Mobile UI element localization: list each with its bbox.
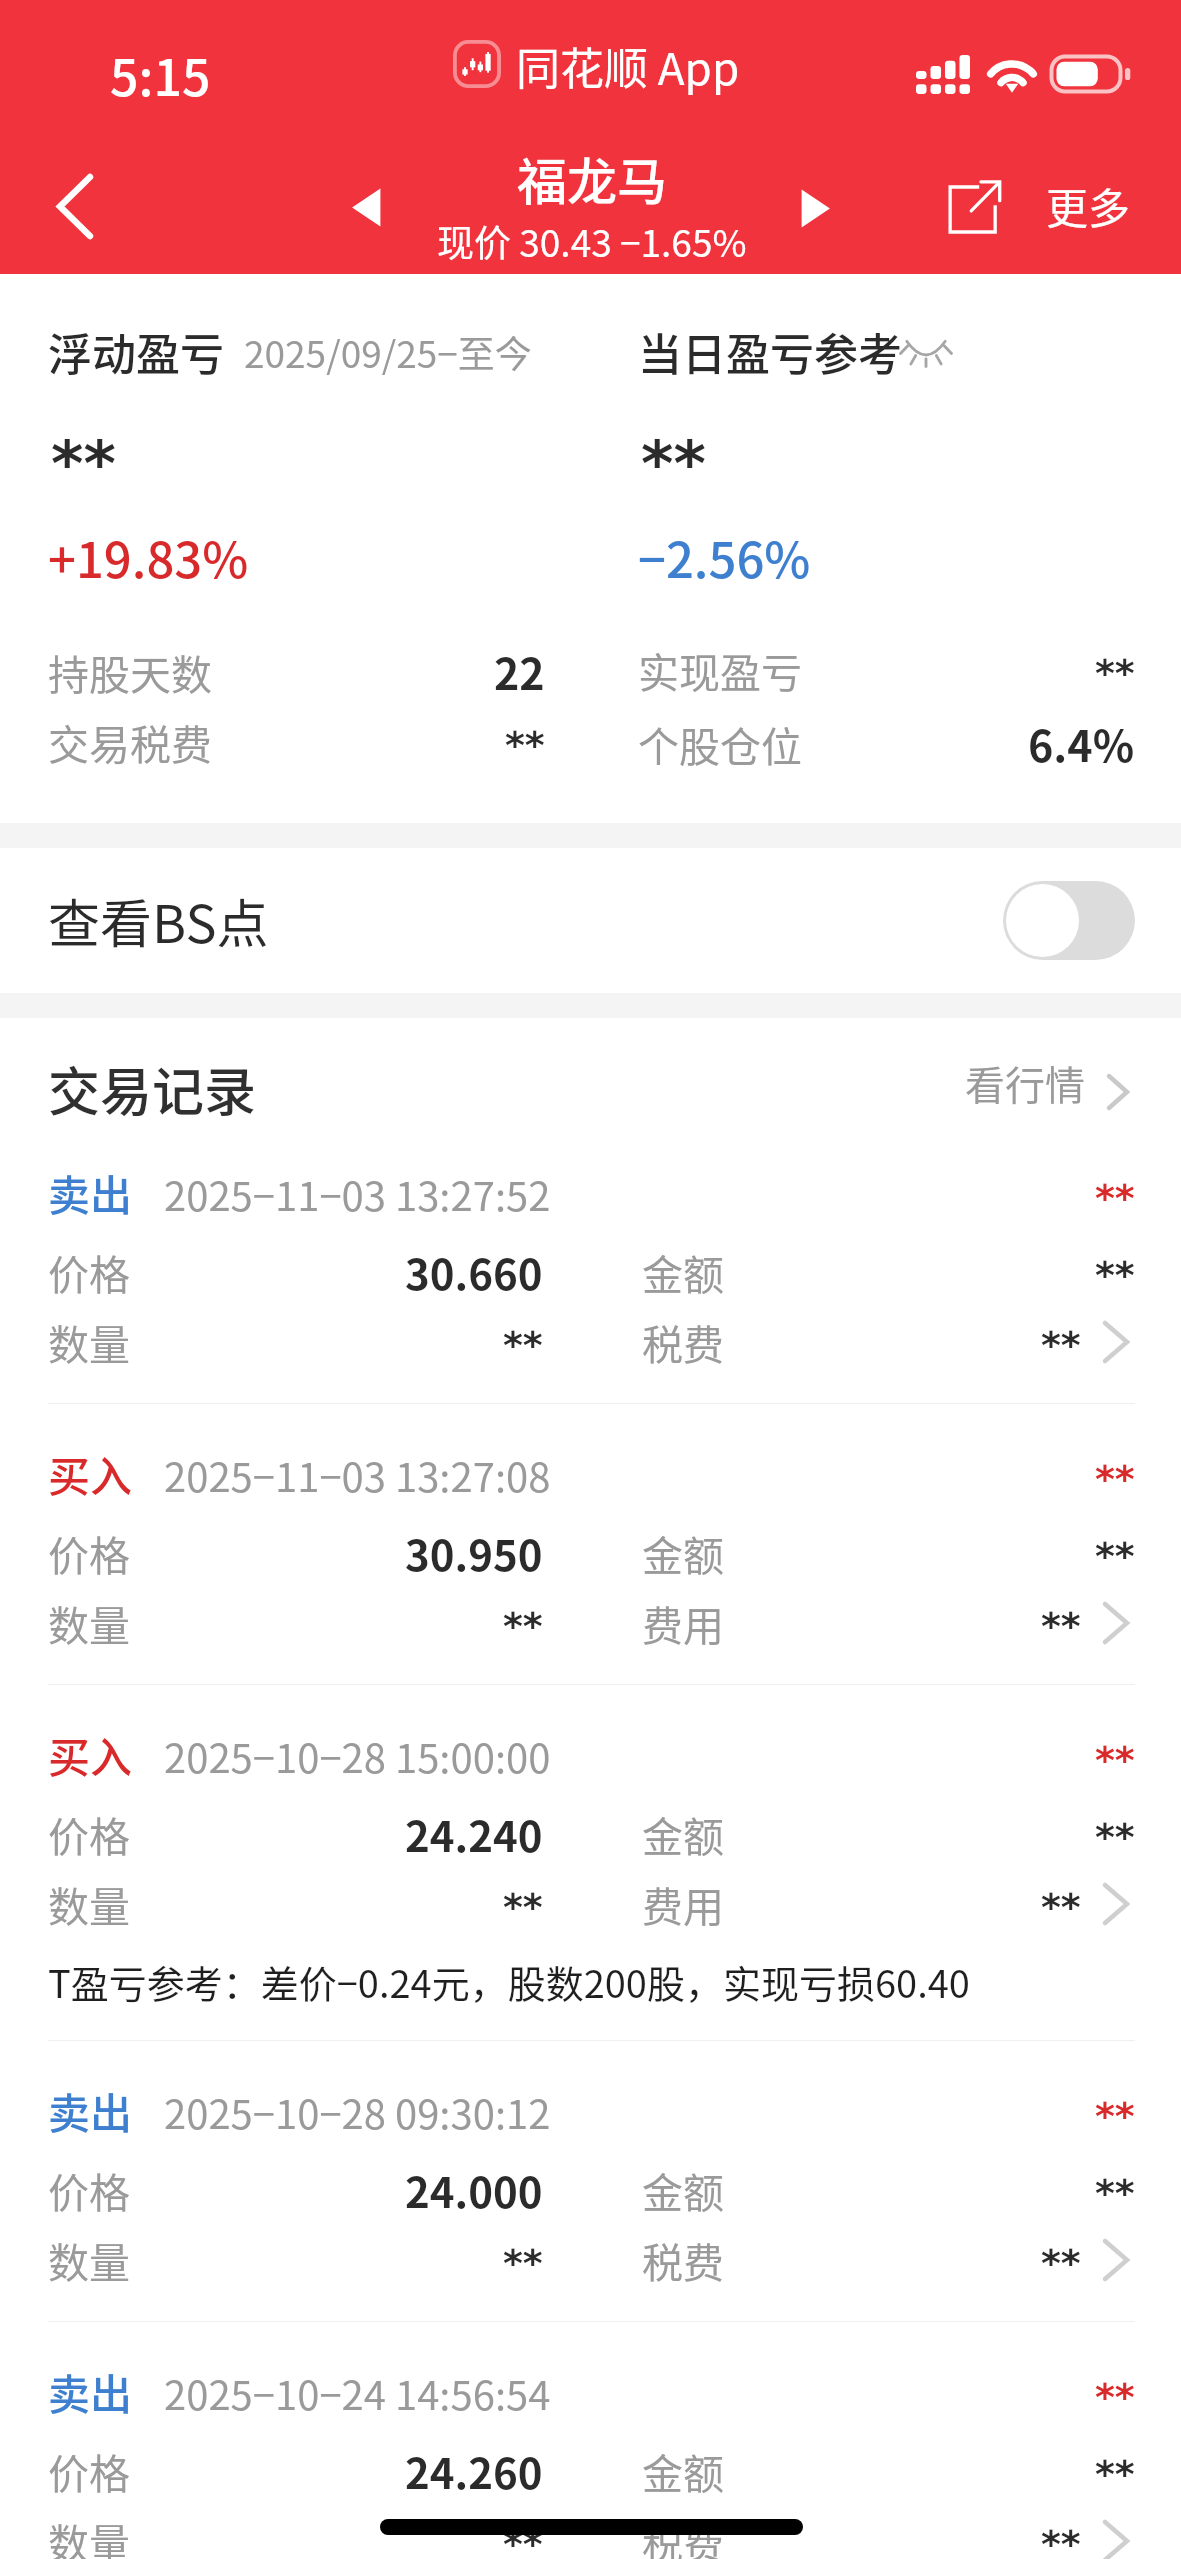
staticText: ** — [1095, 2375, 1135, 2419]
staticText: 价格 — [48, 1523, 130, 1582]
button[interactable]: 看行情 — [941, 1040, 1181, 1122]
staticText: 金额 — [642, 2160, 724, 2219]
staticText: 交易税费 — [48, 712, 212, 771]
staticText: 金额 — [642, 1242, 724, 1301]
staticText: 价格 — [48, 2441, 130, 2500]
staticText: 30.660 — [405, 1241, 543, 1302]
staticText: 24.260 — [405, 2440, 543, 2501]
staticText: −2.56% — [638, 521, 811, 592]
staticText: 2025−10−28 09:30:12 — [164, 2083, 551, 2141]
staticText: 2025−11−03 13:27:08 — [164, 1446, 551, 1504]
staticText: ** — [1095, 651, 1135, 695]
staticText: ** — [1041, 1323, 1081, 1367]
staticText: 价格 — [48, 1242, 130, 1301]
staticText: ** — [503, 2241, 543, 2285]
staticText: ** — [1095, 1815, 1135, 1859]
staticText: 金额 — [642, 1523, 724, 1582]
staticText: ** — [1095, 2171, 1135, 2215]
staticText: 价格 — [48, 2160, 130, 2219]
staticText: ** — [1041, 1604, 1081, 1648]
staticText: 持股天数 — [48, 642, 212, 701]
staticText: ** — [503, 1323, 543, 1367]
staticText: 30.950 — [405, 1522, 543, 1583]
staticText: 浮动盈亏 — [48, 320, 224, 384]
staticText: 个股仓位 — [638, 714, 802, 773]
staticText: 2025/09/25−至今 — [244, 325, 532, 379]
staticText: 2025−10−24 14:56:54 — [164, 2364, 551, 2422]
staticText: 卖出 — [48, 2361, 133, 2422]
button[interactable]: Back — [27, 158, 123, 254]
button[interactable]: 查看BS点 — [0, 848, 1181, 993]
button[interactable]: 买入 — [0, 1404, 1181, 1685]
button[interactable]: Next stock — [776, 168, 856, 248]
staticText: ** — [503, 1885, 543, 1929]
staticText: 24.240 — [405, 1803, 543, 1864]
staticText: 24.000 — [405, 2159, 543, 2220]
staticText: 金额 — [642, 2441, 724, 2500]
staticText: 查看BS点 — [48, 883, 269, 958]
button[interactable]: 更多 — [1030, 157, 1147, 254]
button[interactable]: Previous stock — [326, 167, 406, 247]
staticText: ** — [1041, 2522, 1081, 2559]
staticText: 费用 — [642, 1874, 724, 1933]
staticText: ** — [1095, 1457, 1135, 1501]
staticText: ** — [1095, 2452, 1135, 2496]
staticText: ** — [1095, 2094, 1135, 2138]
staticText: 当日盈亏参考 — [638, 320, 902, 384]
button[interactable]: 卖出 — [0, 2041, 1181, 2322]
staticText: 2025−10−28 15:00:00 — [164, 1727, 551, 1785]
staticText: ** — [1095, 1176, 1135, 1220]
staticText: ** — [1095, 1534, 1135, 1578]
staticText: ** — [1095, 1738, 1135, 1782]
staticText: ** — [1041, 1885, 1081, 1929]
staticText: ** — [503, 2522, 543, 2559]
staticText: 价格 — [48, 1804, 130, 1863]
staticText: 税费 — [642, 2230, 724, 2289]
staticText: 卖出 — [48, 1162, 133, 1223]
staticText: 现价 30.43 −1.65% — [437, 214, 747, 268]
staticText: 数量 — [48, 1874, 130, 1933]
staticText: 数量 — [48, 1593, 130, 1652]
staticText: 金额 — [642, 1804, 724, 1863]
staticText: 实现盈亏 — [638, 640, 802, 699]
staticText: 交易记录 — [48, 1051, 257, 1126]
staticText: ** — [503, 1604, 543, 1648]
staticText: 数量 — [48, 2230, 130, 2289]
staticText: ** — [1095, 1253, 1135, 1297]
staticText: 税费 — [642, 2511, 724, 2559]
button[interactable]: 卖出 — [0, 1123, 1181, 1404]
staticText: 更多 — [1046, 175, 1131, 236]
staticText: 卖出 — [48, 2080, 133, 2141]
staticText: +19.83% — [48, 521, 249, 592]
staticText: 同花顺 App — [516, 34, 740, 98]
staticText: 22 — [494, 640, 545, 702]
staticText: 买入 — [48, 1443, 133, 1504]
staticText: ** — [1041, 2241, 1081, 2285]
staticText: 6.4% — [1028, 712, 1135, 774]
staticText: 税费 — [642, 1312, 724, 1371]
staticText: 看行情 — [965, 1054, 1085, 1112]
staticText: ** — [51, 427, 116, 499]
staticText: T盈亏参考：差价−0.24元，股数200股，实现亏损60.40 — [48, 1954, 970, 2009]
button[interactable]: 卖出 — [0, 2322, 1181, 2559]
staticText: 5:15 — [110, 38, 211, 110]
staticText: ** — [505, 723, 545, 767]
staticText: 福龙马 — [517, 142, 667, 214]
button[interactable]: 买入 — [0, 1685, 1181, 2041]
staticText: 买入 — [48, 1724, 133, 1785]
staticText: 2025−11−03 13:27:52 — [164, 1165, 551, 1223]
staticText: 数量 — [48, 2511, 130, 2559]
staticText: 费用 — [642, 1593, 724, 1652]
staticText: 数量 — [48, 1312, 130, 1371]
staticText: ** — [641, 427, 706, 499]
button[interactable]: Share — [930, 164, 1016, 250]
